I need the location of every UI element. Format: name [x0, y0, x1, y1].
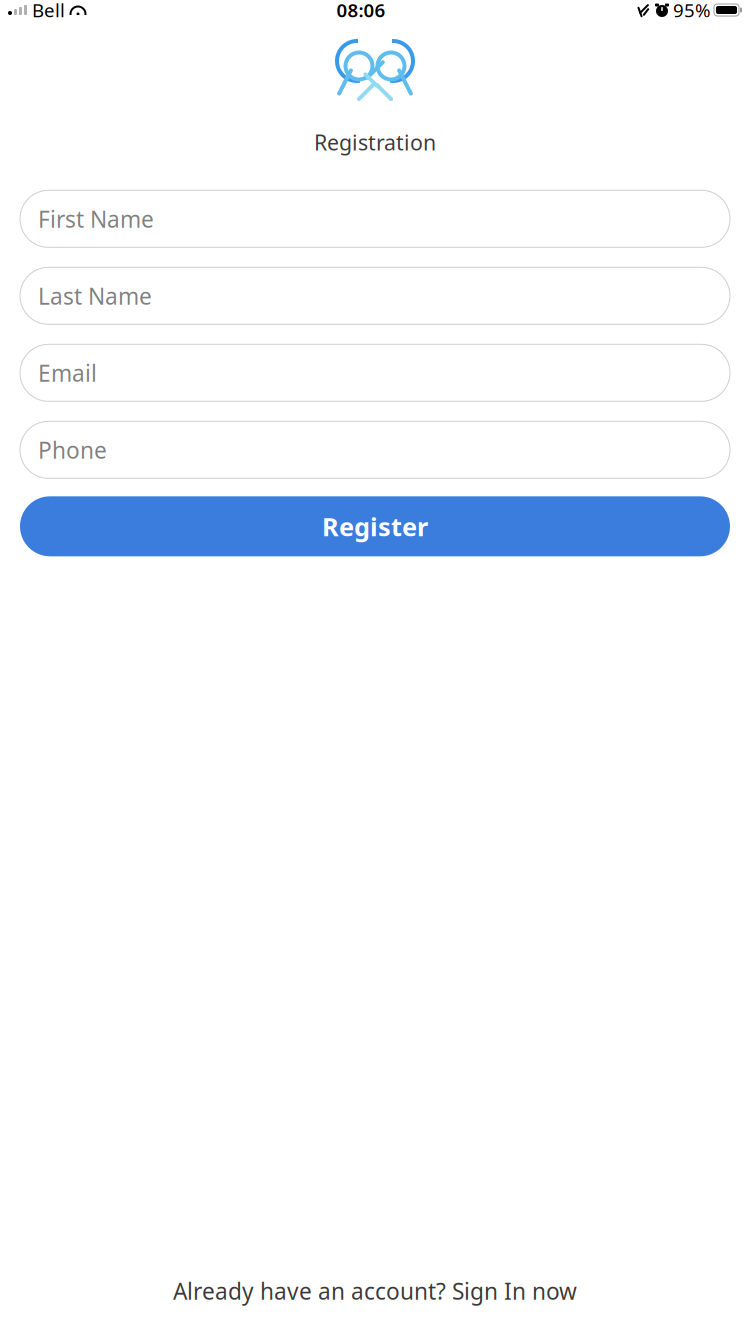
button[interactable]: Already have an account? Sign In now: [20, 1268, 730, 1314]
staticText: Email: [38, 358, 97, 388]
staticText: Last Name: [38, 281, 152, 311]
staticText: 95%: [673, 0, 711, 22]
staticText: 08:06: [336, 0, 385, 22]
staticText: Bell: [32, 0, 65, 22]
staticText: Already have an account? Sign In now: [173, 1276, 577, 1306]
staticText: Register: [322, 509, 428, 543]
button[interactable]: Register: [20, 496, 730, 556]
staticText: Phone: [38, 435, 107, 465]
staticText: Registration: [314, 128, 436, 156]
staticText: First Name: [38, 204, 154, 234]
